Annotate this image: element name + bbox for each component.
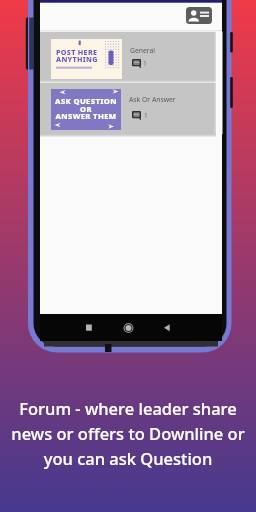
button[interactable] [186,7,212,24]
staticText: 1 [143,59,147,68]
staticText: ASK QUESTION OR ANSWER THEM [51,96,121,121]
staticText: Ask Or Answer [129,95,176,104]
staticText: General [130,46,156,55]
staticText: Forum - where leader share news or offer… [0,397,256,469]
button[interactable]: ASK QUESTION OR ANSWER THEM [40,83,216,134]
staticText: POST HERE ANYTHING [56,47,98,64]
button[interactable]: POST HERE ANYTHING [40,32,216,81]
staticText: 1 [144,111,148,120]
